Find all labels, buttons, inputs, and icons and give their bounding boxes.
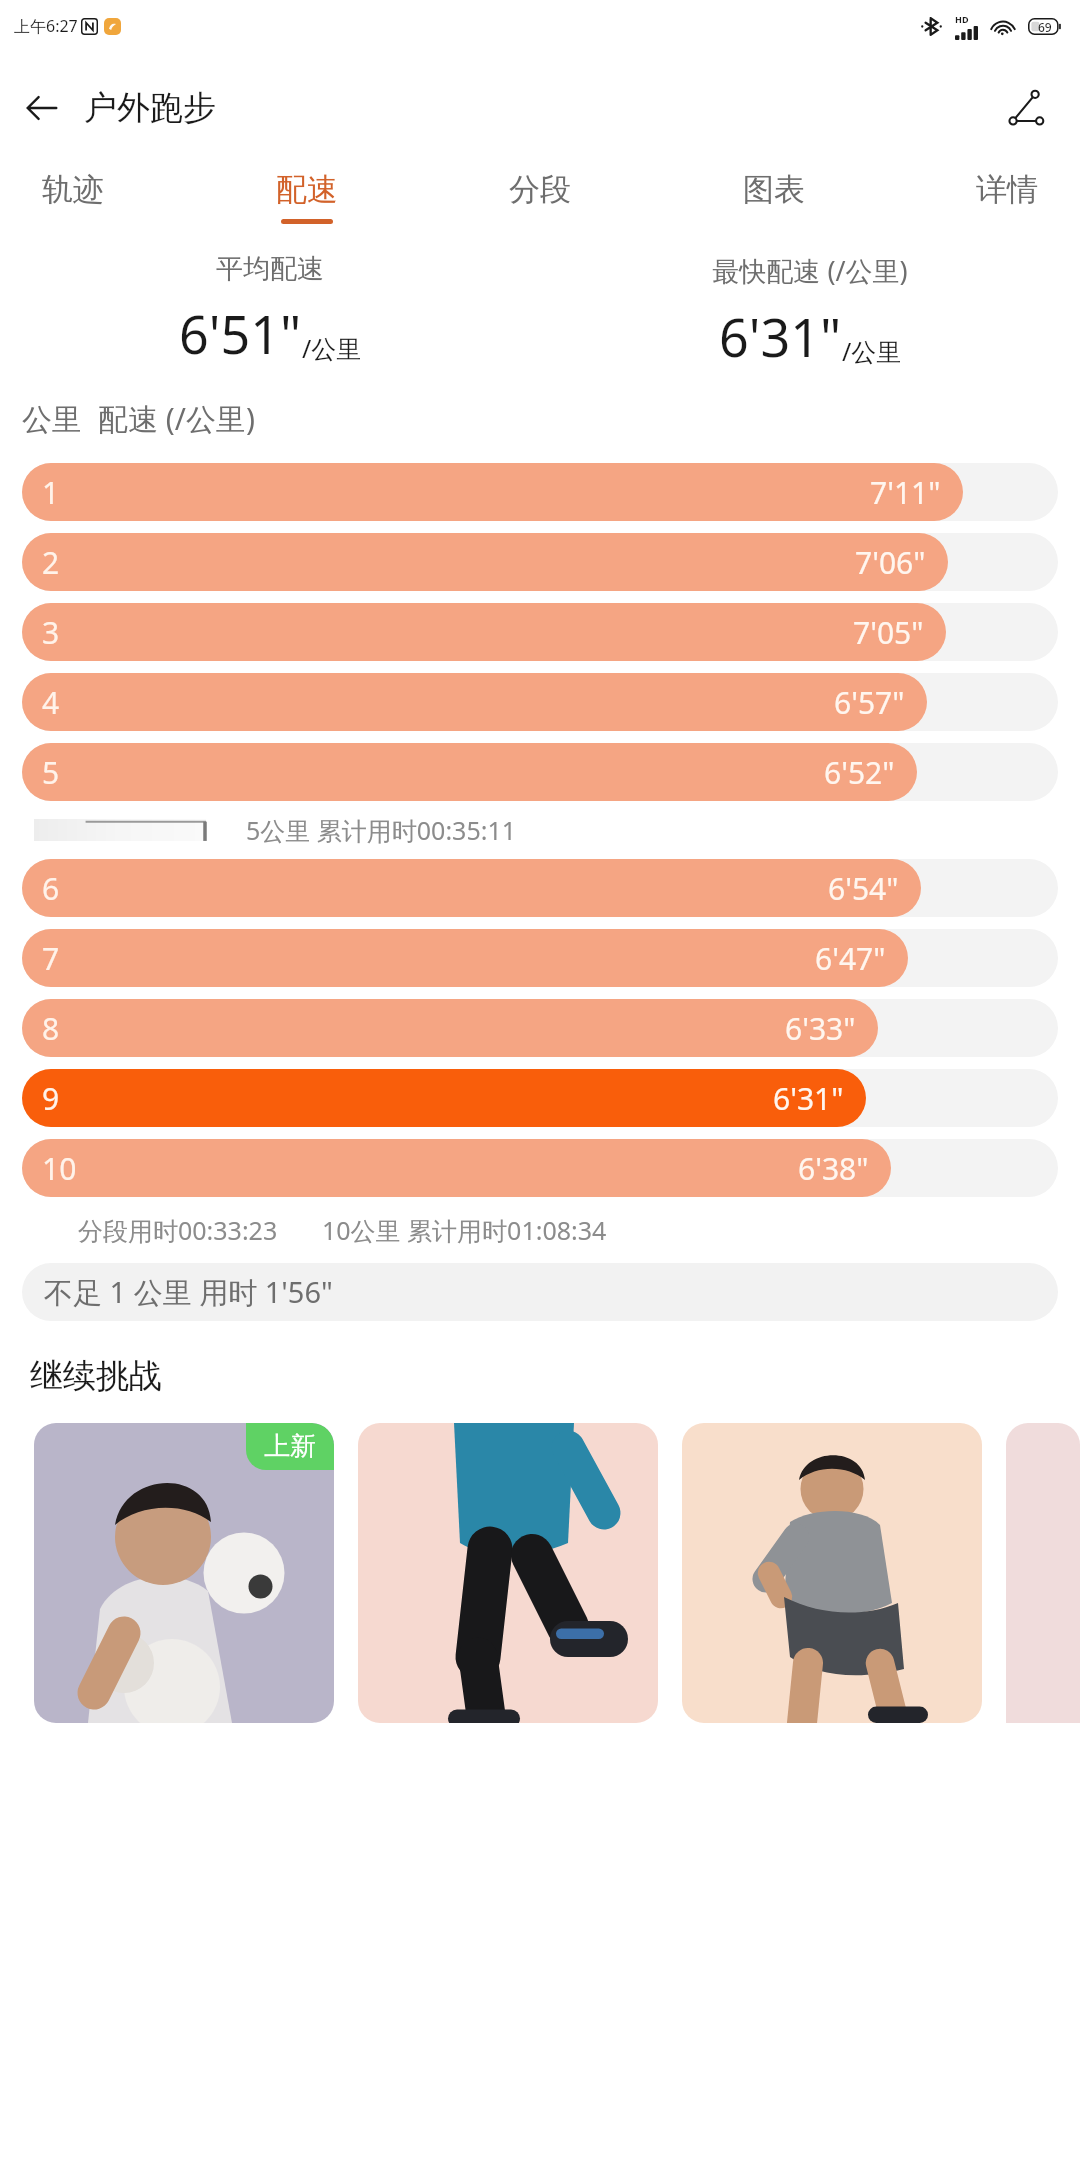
button[interactable]: 图表: [731, 164, 817, 230]
button[interactable]: Share: [988, 70, 1064, 146]
staticText: 6'47": [815, 938, 886, 979]
button[interactable]: [358, 1423, 658, 1723]
staticText: 不足 1 公里 用时 1'56": [44, 1272, 333, 1312]
button[interactable]: 上新: [34, 1423, 334, 1723]
staticText: /公里: [302, 331, 362, 365]
staticText: 2: [42, 542, 60, 583]
staticText: HD: [955, 13, 969, 25]
staticText: 6'31": [719, 301, 842, 372]
button[interactable]: 2: [22, 527, 1058, 597]
staticText: 9: [42, 1078, 60, 1119]
staticText: 8: [42, 1008, 60, 1049]
button[interactable]: 8: [22, 993, 1058, 1063]
staticText: 6'54": [828, 868, 899, 909]
staticText: 分段用时00:33:23: [78, 1213, 278, 1247]
staticText: 3: [42, 612, 60, 653]
staticText: 6'38": [798, 1148, 869, 1189]
staticText: 5: [42, 752, 60, 793]
staticText: 上新: [264, 1430, 316, 1463]
staticText: 7'05": [853, 612, 924, 653]
staticText: 10公里 累计用时01:08:34: [322, 1213, 607, 1247]
button[interactable]: Back: [0, 66, 84, 150]
button[interactable]: [682, 1423, 982, 1723]
button[interactable]: 6: [22, 853, 1058, 923]
staticText: 继续挑战: [30, 1355, 162, 1397]
button[interactable]: 3: [22, 597, 1058, 667]
staticText: 69: [1038, 19, 1052, 35]
staticText: /公里: [842, 334, 902, 368]
staticText: 6'31": [773, 1078, 844, 1119]
button[interactable]: 轨迹: [30, 164, 116, 230]
staticText: 6: [42, 868, 60, 909]
button[interactable]: 4: [22, 667, 1058, 737]
staticText: 平均配速: [216, 252, 324, 286]
staticText: 6'57": [834, 682, 905, 723]
staticText: 5公里 累计用时00:35:11: [246, 813, 517, 847]
staticText: 6'33": [785, 1008, 856, 1049]
staticText: 4: [42, 682, 60, 723]
staticText: 配速 (/公里): [98, 398, 255, 439]
staticText: 详情: [976, 170, 1038, 209]
button[interactable]: [1006, 1423, 1080, 1723]
button[interactable]: 详情: [964, 164, 1050, 230]
button[interactable]: 10: [22, 1133, 1058, 1203]
button[interactable]: 配速: [264, 164, 350, 230]
staticText: 6'51": [179, 298, 302, 369]
staticText: 1: [42, 472, 60, 513]
staticText: 7: [42, 938, 60, 979]
staticText: 轨迹: [42, 170, 104, 209]
staticText: 图表: [743, 170, 805, 209]
staticText: 公里: [22, 401, 82, 439]
staticText: 上午6:27: [14, 15, 78, 37]
button[interactable]: 1: [22, 457, 1058, 527]
staticText: 户外跑步: [84, 87, 216, 129]
button[interactable]: 不足 1 公里 用时 1'56": [22, 1263, 1058, 1321]
button[interactable]: 7: [22, 923, 1058, 993]
button[interactable]: 5: [22, 737, 1058, 807]
button[interactable]: 9: [22, 1063, 1058, 1133]
staticText: 6'52": [824, 752, 895, 793]
staticText: 7'11": [870, 472, 941, 513]
staticText: 7'06": [855, 542, 926, 583]
staticText: 配速: [276, 170, 338, 209]
button[interactable]: 分段: [497, 164, 583, 230]
staticText: 10: [42, 1148, 77, 1189]
staticText: 最快配速 (/公里): [712, 252, 908, 289]
staticText: 分段: [509, 170, 571, 209]
